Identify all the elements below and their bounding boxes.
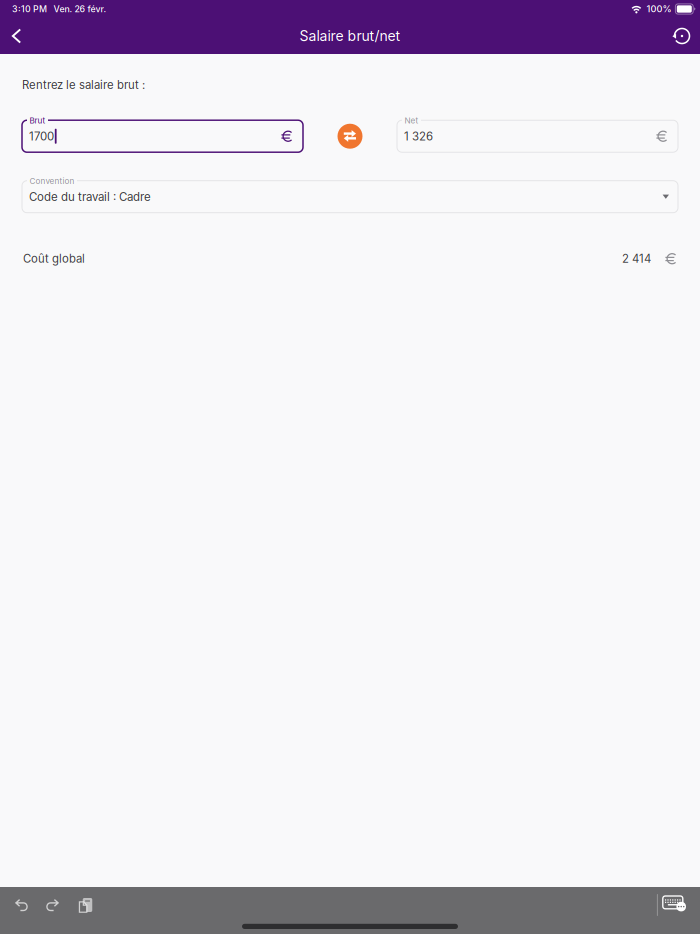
staticText: Net [404, 116, 418, 125]
staticText: 2 414 [622, 252, 651, 266]
staticText: 3:10 PM [12, 4, 47, 14]
button[interactable]: Undo [6, 888, 37, 922]
staticText: Coût global [23, 252, 85, 266]
button[interactable]: Paste [68, 888, 99, 922]
button[interactable]: Swap brut and net [333, 120, 366, 153]
button[interactable]: Code du travail : Cadre [22, 181, 678, 213]
staticText: 1 326 [404, 129, 433, 143]
button[interactable]: Keyboard options [658, 888, 694, 922]
button[interactable]: History [666, 20, 698, 52]
staticText: Rentrez le salaire brut : [22, 78, 145, 92]
button[interactable]: Redo [37, 888, 68, 922]
staticText: 100% [646, 3, 671, 14]
staticText: Code du travail : Cadre [29, 190, 151, 204]
staticText: Salaire brut/net [299, 27, 400, 44]
staticText: Brut [29, 116, 45, 125]
staticText: Convention [29, 176, 74, 186]
staticText: Ven. 26 févr. [53, 4, 106, 14]
staticText: 1700 [29, 129, 54, 143]
button[interactable]: Back [1, 20, 33, 52]
